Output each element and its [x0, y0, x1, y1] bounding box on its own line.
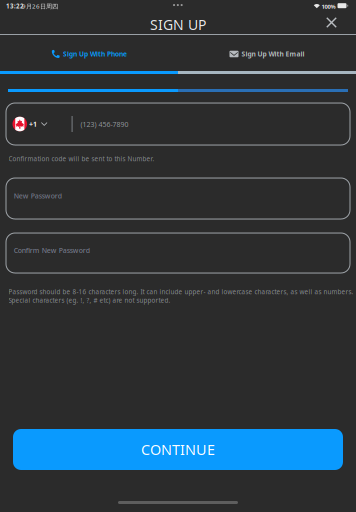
staticText: Confirm New Password	[14, 246, 90, 255]
staticText: +1	[29, 119, 37, 129]
staticText: (123) 456-7890	[80, 119, 128, 129]
staticText: Special characters (eg. !, ?, # etc) are…	[8, 296, 170, 304]
staticText: Sign Up With Email	[241, 49, 304, 59]
button[interactable]: Sign Up With Email	[178, 38, 356, 70]
staticText: CONTINUE	[141, 440, 215, 459]
staticText: 100%	[321, 3, 335, 10]
staticText: Sign Up With Phone	[63, 49, 127, 59]
staticText: New Password	[14, 191, 62, 201]
staticText: Confirmation code will be sent to this N…	[8, 154, 154, 163]
button[interactable]: Confirm New Password	[6, 233, 350, 273]
staticText: 13:22	[6, 2, 24, 10]
button[interactable]: Close	[320, 11, 343, 34]
button[interactable]: +1	[6, 103, 350, 145]
staticText: Password should be 8-16 characters long.…	[8, 287, 353, 296]
button[interactable]: CONTINUE	[13, 429, 343, 470]
button[interactable]: New Password	[6, 178, 350, 219]
staticText: SIGN UP	[150, 15, 206, 34]
staticText: 9月26日周四	[22, 2, 58, 10]
button[interactable]: Sign Up With Phone	[0, 38, 178, 70]
